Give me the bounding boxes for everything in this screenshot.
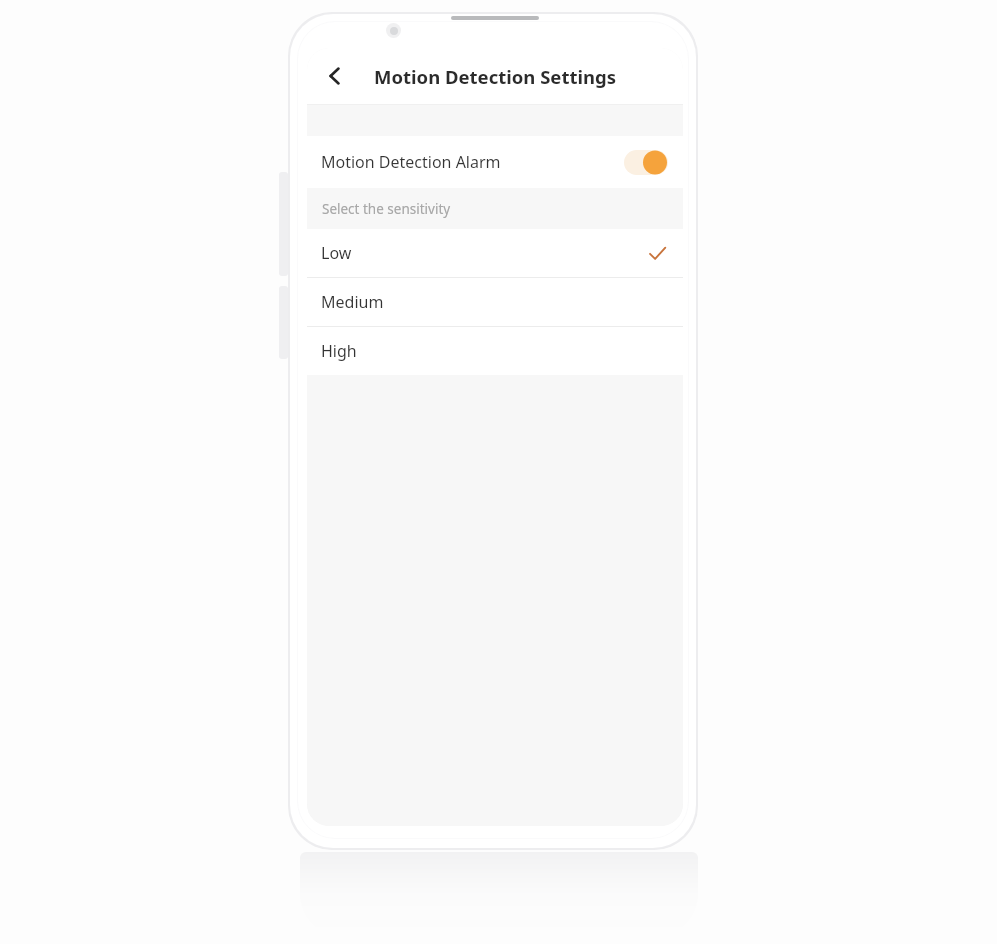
button[interactable]: Medium: [307, 278, 683, 326]
staticText: Motion Detection Alarm: [321, 151, 501, 173]
button[interactable]: Low: [307, 229, 683, 277]
staticText: Medium: [321, 291, 384, 313]
button[interactable]: Motion Detection Alarm: [307, 136, 683, 188]
staticText: High: [321, 340, 357, 362]
button[interactable]: Motion Detection Alarm toggle: [624, 150, 668, 175]
button[interactable]: High: [307, 327, 683, 375]
staticText: Motion Detection Settings: [307, 64, 683, 89]
staticText: Select the sensitivity: [322, 200, 451, 218]
button[interactable]: Back: [313, 54, 357, 98]
staticText: Low: [321, 242, 352, 264]
